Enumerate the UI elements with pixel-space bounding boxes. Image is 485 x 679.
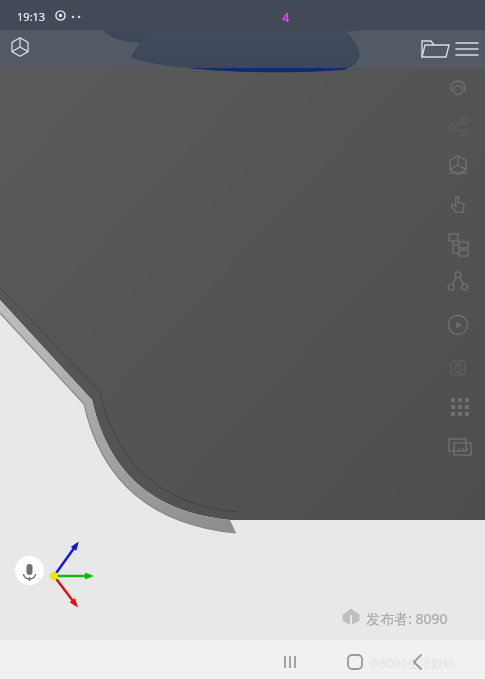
button[interactable]: Grid xyxy=(444,391,472,419)
button[interactable]: Notes xyxy=(444,430,472,458)
staticText: 发布者: 8090 xyxy=(366,609,448,628)
button[interactable]: Recent apps xyxy=(275,647,305,677)
staticText: 19:13 xyxy=(17,9,46,24)
button[interactable]: Undo xyxy=(444,74,472,102)
button[interactable]: Pan xyxy=(444,190,472,218)
button[interactable]: Voice input xyxy=(15,556,44,585)
button[interactable]: Structure xyxy=(444,228,472,256)
button[interactable]: Menu xyxy=(450,33,478,61)
button[interactable]: Camera xyxy=(444,354,472,382)
button[interactable]: Play xyxy=(444,311,472,339)
button[interactable]: Model xyxy=(6,33,34,61)
staticText: 4 xyxy=(282,8,290,26)
button[interactable]: Home xyxy=(340,647,370,677)
button[interactable]: View cube xyxy=(444,151,472,179)
button[interactable]: Assembly xyxy=(444,267,472,295)
button[interactable]: Open file xyxy=(418,33,446,61)
staticText: @8090生活数码 xyxy=(369,655,456,671)
button[interactable]: Back xyxy=(403,647,433,677)
